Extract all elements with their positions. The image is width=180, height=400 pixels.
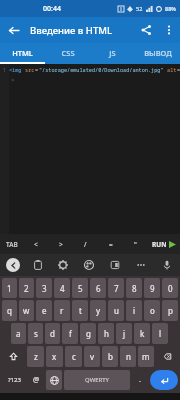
staticText: > [59,240,63,249]
button[interactable]: / [73,234,98,254]
button[interactable]: Keyboard layout [102,254,128,276]
button[interactable]: b [102,346,118,367]
button[interactable]: JS [90,43,135,62]
staticText: = [109,240,113,249]
staticText: 52 [136,5,143,12]
button[interactable]: z [27,346,44,367]
button[interactable]: h [98,323,114,344]
button[interactable]: Backspace [156,346,178,367]
staticText: d [50,328,55,339]
button[interactable]: y [90,300,106,321]
staticText: 4 [60,283,65,294]
staticText: k [140,328,145,339]
button[interactable]: m [138,346,154,367]
button[interactable]: 1 [2,278,17,298]
button[interactable]: d [45,323,60,344]
staticText: 2 [24,283,29,294]
button[interactable]: RUN [148,234,180,254]
button[interactable]: 0 [162,278,178,298]
button[interactable]: 7 [108,278,124,298]
button[interactable]: t [72,300,88,321]
button[interactable]: < [24,234,48,254]
button[interactable]: c [65,346,82,367]
button[interactable]: 4 [54,278,70,298]
staticText: v [90,351,95,362]
button[interactable]: 5 [72,278,88,298]
button[interactable]: l [152,323,168,344]
button[interactable]: At sign [28,369,44,391]
button[interactable]: g [80,323,96,344]
staticText: ВЫВОД [144,48,172,58]
button[interactable]: Period [132,369,148,391]
staticText: 9 [150,283,155,294]
staticText: RUN [152,240,167,249]
button[interactable]: TAB [0,234,24,254]
button[interactable]: r [54,300,70,321]
button[interactable]: Change language [46,370,62,390]
button[interactable]: Settings [50,254,76,276]
button[interactable]: 2 [19,278,34,298]
staticText: alt [164,66,177,73]
staticText: > [11,76,15,84]
button[interactable]: = [98,234,123,254]
staticText: < [34,240,38,249]
button[interactable]: ВЫВОД [135,43,180,62]
staticText: 88% [165,5,176,12]
staticText: r [60,305,64,316]
button[interactable]: Voice input [154,254,180,276]
button[interactable]: CSS [45,43,90,62]
staticText: @ [33,375,40,385]
staticText: 00:44 [43,4,61,14]
staticText: <img [9,66,22,73]
staticText: m [142,351,150,362]
staticText: QWERTY [85,376,110,384]
button[interactable]: QWERTY [64,370,130,390]
staticText: l [159,328,162,339]
button[interactable]: k [134,323,150,344]
button[interactable]: n [120,346,136,367]
staticText: u [114,305,119,316]
button[interactable]: More options [158,19,180,41]
button[interactable]: 8 [126,278,142,298]
staticText: ?123 [8,376,21,384]
button[interactable]: > [48,234,73,254]
button[interactable]: u [108,300,124,321]
button[interactable]: i [126,300,142,321]
button[interactable]: Back [0,254,25,276]
button[interactable]: f [62,323,78,344]
button[interactable]: a [11,323,26,344]
button[interactable]: w [19,300,34,321]
button[interactable]: Palette [76,254,102,276]
staticText: 1 [7,283,12,294]
staticText: x [52,351,57,362]
button[interactable]: Back [0,17,26,43]
button[interactable]: Clipboard [25,254,50,276]
staticText: . [139,375,141,385]
button[interactable]: e [36,300,52,321]
button[interactable]: s [28,323,43,344]
button[interactable]: o [144,300,160,321]
staticText: j [123,328,126,339]
button[interactable]: More [128,254,154,276]
button[interactable]: Enter [150,370,178,390]
staticText: s [34,328,38,339]
button[interactable]: Share [134,18,158,42]
button[interactable]: 6 [90,278,106,298]
staticText: q [7,305,12,316]
staticText: n [126,351,131,362]
staticText: 6 [96,283,101,294]
button[interactable]: v [84,346,100,367]
button[interactable]: ?123 [2,369,26,391]
button[interactable]: HTML [0,43,45,62]
button[interactable]: " [123,234,148,254]
button[interactable]: j [116,323,132,344]
button[interactable]: q [2,300,17,321]
button[interactable]: 3 [36,278,52,298]
button[interactable]: 9 [144,278,160,298]
button[interactable]: Shift [2,346,25,367]
button[interactable]: p [162,300,178,321]
staticText: e [42,305,47,316]
staticText: o [150,305,155,316]
staticText: 3 [42,283,47,294]
button[interactable]: x [46,346,63,367]
